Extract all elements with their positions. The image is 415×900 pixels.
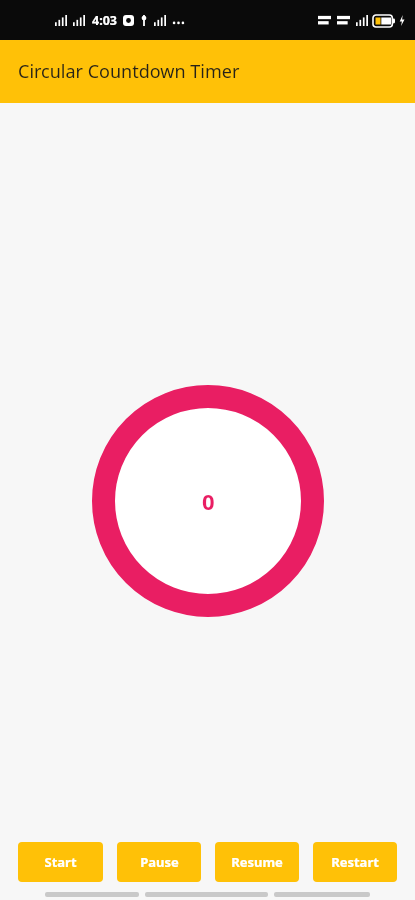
button[interactable]: Restart xyxy=(313,842,397,882)
staticText: 4:03 xyxy=(92,12,117,29)
staticText: Start xyxy=(44,853,77,871)
staticText: Circular Countdown Timer xyxy=(18,59,240,84)
staticText: Resume xyxy=(231,853,283,871)
button[interactable]: Start xyxy=(18,842,103,882)
button[interactable]: Pause xyxy=(117,842,201,882)
staticText: Restart xyxy=(331,853,379,871)
button[interactable]: Resume xyxy=(215,842,299,882)
staticText: 0 xyxy=(202,486,215,516)
staticText: Pause xyxy=(140,853,179,871)
